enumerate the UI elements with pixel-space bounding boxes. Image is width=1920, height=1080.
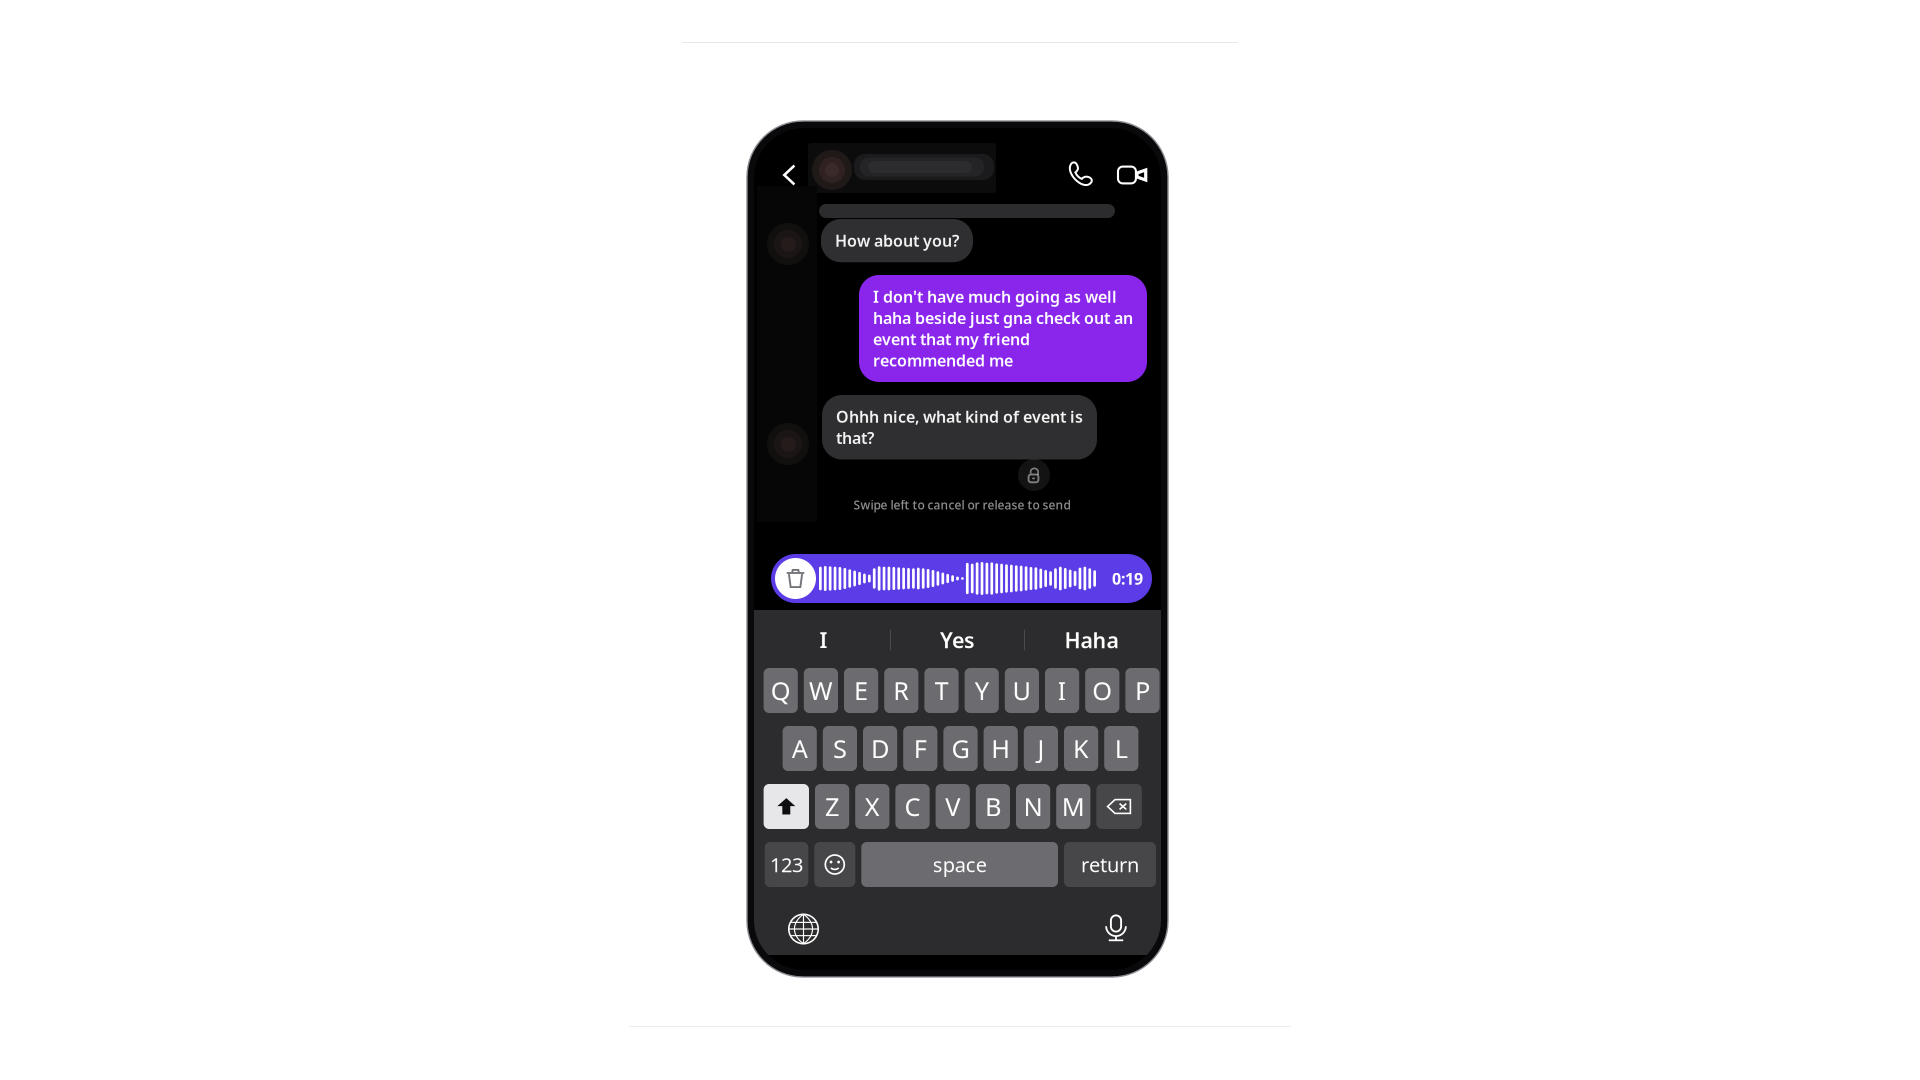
- staticText: space: [933, 851, 987, 878]
- button[interactable]: Video call: [1118, 163, 1146, 187]
- staticText: A: [792, 732, 808, 765]
- staticText: 123: [770, 851, 803, 878]
- staticText: B: [985, 790, 1001, 823]
- button[interactable]: G: [943, 726, 978, 771]
- staticText: return: [1081, 851, 1139, 878]
- button[interactable]: I: [757, 620, 890, 660]
- staticText: I don't have much going as well haha bes…: [873, 286, 1133, 371]
- staticText: F: [914, 732, 927, 765]
- button[interactable]: X: [855, 784, 889, 829]
- staticText: Ohhh nice, what kind of event is that?: [836, 406, 1083, 448]
- button[interactable]: Haha: [1025, 620, 1158, 660]
- staticText: T: [934, 674, 948, 707]
- button[interactable]: Audio call: [1062, 158, 1096, 192]
- staticText: Haha: [1064, 626, 1118, 654]
- button[interactable]: Conversation details: [808, 144, 996, 192]
- button[interactable]: T: [924, 668, 959, 713]
- button[interactable]: O: [1085, 668, 1119, 713]
- staticText: G: [951, 732, 969, 765]
- button[interactable]: Delete: [1096, 784, 1142, 829]
- button[interactable]: D: [863, 726, 897, 771]
- button[interactable]: R: [884, 668, 918, 713]
- staticText: Y: [975, 674, 989, 707]
- staticText: I: [819, 626, 827, 654]
- staticText: 0:19: [1112, 568, 1143, 589]
- button[interactable]: Back: [773, 158, 807, 192]
- staticText: S: [833, 732, 847, 765]
- button[interactable]: Y: [965, 668, 999, 713]
- staticText: Yes: [940, 626, 975, 654]
- button[interactable]: M: [1056, 784, 1090, 829]
- button[interactable]: Dictate: [1101, 913, 1131, 943]
- button[interactable]: H: [984, 726, 1018, 771]
- staticText: C: [904, 790, 920, 823]
- staticText: J: [1037, 732, 1044, 765]
- button[interactable]: C: [895, 784, 930, 829]
- button[interactable]: U: [1005, 668, 1039, 713]
- button[interactable]: return: [1064, 842, 1156, 887]
- staticText: Swipe left to cancel or release to send: [853, 497, 1070, 513]
- staticText: R: [893, 674, 909, 707]
- button[interactable]: Z: [815, 784, 849, 829]
- button[interactable]: S: [823, 726, 857, 771]
- staticText: N: [1024, 790, 1043, 823]
- staticText: W: [809, 674, 833, 707]
- button[interactable]: Cancel recording: [775, 558, 816, 599]
- button[interactable]: Yes: [891, 620, 1024, 660]
- staticText: Q: [771, 674, 791, 707]
- button[interactable]: Shift: [764, 784, 809, 829]
- button[interactable]: K: [1064, 726, 1098, 771]
- button[interactable]: Numbers keyboard: [765, 842, 808, 887]
- button[interactable]: W: [804, 668, 838, 713]
- button[interactable]: F: [903, 726, 937, 771]
- button[interactable]: Q: [764, 668, 798, 713]
- staticText: How about you?: [835, 230, 959, 251]
- staticText: E: [854, 674, 868, 707]
- staticText: I: [1058, 674, 1067, 707]
- staticText: H: [991, 732, 1010, 765]
- staticText: L: [1115, 732, 1128, 765]
- button[interactable]: J: [1024, 726, 1058, 771]
- button[interactable]: E: [844, 668, 878, 713]
- staticText: M: [1062, 790, 1085, 823]
- staticText: Z: [825, 790, 839, 823]
- button[interactable]: Emoji: [814, 842, 855, 887]
- button[interactable]: I: [1045, 668, 1079, 713]
- button[interactable]: N: [1016, 784, 1050, 829]
- staticText: V: [945, 790, 960, 823]
- button[interactable]: P: [1125, 668, 1160, 713]
- button[interactable]: A: [783, 726, 817, 771]
- button[interactable]: Next keyboard: [785, 911, 821, 947]
- staticText: X: [865, 790, 880, 823]
- staticText: O: [1092, 674, 1112, 707]
- staticText: U: [1012, 674, 1031, 707]
- staticText: K: [1073, 732, 1089, 765]
- staticText: D: [871, 732, 889, 765]
- button[interactable]: L: [1104, 726, 1138, 771]
- button[interactable]: B: [976, 784, 1010, 829]
- button[interactable]: V: [936, 784, 970, 829]
- button[interactable]: space: [861, 842, 1058, 887]
- staticText: P: [1135, 674, 1150, 707]
